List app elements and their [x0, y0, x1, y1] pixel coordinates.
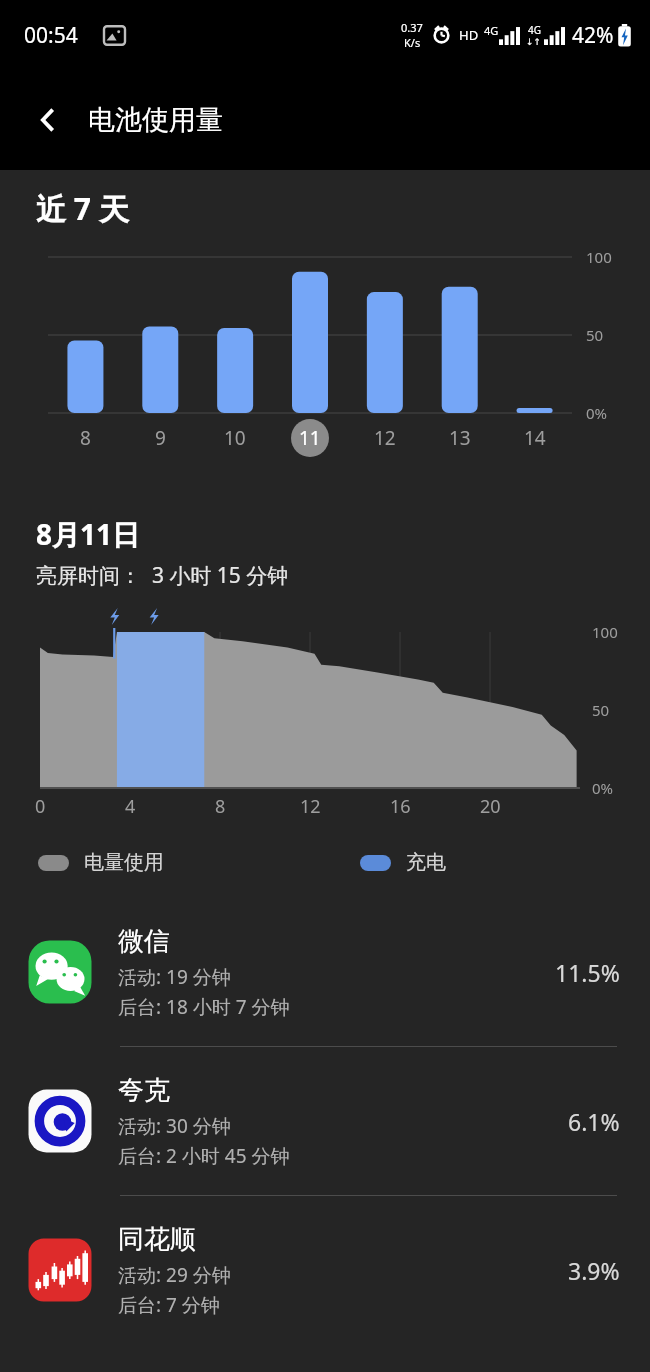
staticText: HD	[459, 26, 479, 44]
staticText: 0%	[592, 778, 614, 798]
staticText: 12	[374, 425, 396, 451]
staticText: 13	[449, 425, 471, 451]
staticText: 16	[390, 794, 411, 819]
staticText: 后台: 2 小时 45 分钟	[118, 1143, 290, 1169]
staticText: 电量使用	[84, 850, 164, 875]
staticText: 同花顺	[118, 1223, 196, 1256]
staticText: 后台: 7 分钟	[118, 1292, 220, 1318]
button[interactable]: 同花顺	[0, 1196, 650, 1344]
staticText: 11	[299, 425, 321, 451]
staticText: 夸克	[118, 1074, 170, 1107]
staticText: 0.37	[401, 20, 423, 35]
staticText: 00:54	[24, 21, 78, 50]
staticText: 活动: 29 分钟	[118, 1262, 231, 1288]
staticText: 12	[300, 794, 321, 819]
staticText: 50	[586, 325, 604, 345]
staticText: 100	[592, 622, 618, 642]
staticText: 11.5%	[555, 957, 620, 988]
staticText: 100	[586, 247, 612, 267]
staticText: 14	[524, 425, 546, 451]
staticText: 8	[215, 794, 226, 819]
staticText: 4	[125, 794, 136, 819]
staticText: 0%	[586, 403, 608, 423]
staticText: 8	[80, 425, 91, 451]
staticText: 8月11日	[36, 515, 141, 553]
staticText: 活动: 19 分钟	[118, 964, 231, 990]
staticText: 42%	[572, 21, 614, 50]
staticText: 10	[224, 425, 246, 451]
staticText: 20	[480, 794, 501, 819]
staticText: 50	[592, 700, 610, 720]
staticText: 3.9%	[568, 1255, 620, 1286]
staticText: ↓↑	[526, 37, 542, 47]
staticText: 电池使用量	[88, 103, 223, 137]
staticText: 9	[155, 425, 166, 451]
staticText: K/s	[404, 35, 421, 50]
staticText: 活动: 30 分钟	[118, 1113, 231, 1139]
button[interactable]: 微信	[0, 898, 650, 1046]
staticText: 后台: 18 小时 7 分钟	[118, 994, 290, 1020]
staticText: 4G	[484, 23, 499, 38]
button[interactable]: 夸克	[0, 1047, 650, 1195]
staticText: 亮屏时间： 3 小时 15 分钟	[36, 561, 289, 590]
button[interactable]: Back	[20, 92, 76, 148]
staticText: 6.1%	[568, 1106, 620, 1137]
staticText: 4G	[528, 23, 541, 37]
staticText: 近 7 天	[36, 188, 129, 229]
staticText: 0	[35, 794, 46, 819]
staticText: 充电	[406, 850, 446, 875]
staticText: 微信	[118, 925, 170, 958]
